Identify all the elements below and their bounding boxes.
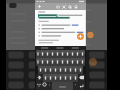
button[interactable]: K <box>73 66 78 74</box>
button[interactable]: Compose <box>77 33 84 40</box>
button[interactable]: 4 <box>50 50 55 58</box>
button[interactable]: R <box>50 58 55 66</box>
button[interactable]: D <box>48 66 53 74</box>
button[interactable]: C <box>53 74 58 82</box>
button[interactable]: Paste <box>73 4 79 10</box>
button[interactable]: I <box>70 58 75 66</box>
button[interactable]: Space <box>52 82 73 90</box>
button[interactable]: 6 <box>60 50 65 58</box>
button[interactable]: Shift <box>36 74 43 82</box>
button[interactable]: Emoji <box>42 82 47 90</box>
button[interactable]: H <box>63 66 68 74</box>
button[interactable]: P <box>80 58 85 66</box>
button[interactable]: Period <box>73 82 78 90</box>
button[interactable]: 0 <box>80 50 85 58</box>
button[interactable]: G <box>58 66 63 74</box>
button[interactable]: S <box>43 66 48 74</box>
button[interactable]: Undo <box>55 4 61 10</box>
button[interactable]: Symbols <box>36 82 42 90</box>
button[interactable]: O <box>75 58 80 66</box>
button[interactable]: 1 <box>36 50 40 58</box>
button[interactable]: 9 <box>75 50 80 58</box>
button[interactable]: X <box>48 74 53 82</box>
button[interactable]: Enter <box>78 82 85 90</box>
button[interactable]: L <box>78 66 83 74</box>
button[interactable]: V <box>58 74 63 82</box>
button[interactable]: N <box>68 74 73 82</box>
button[interactable]: U <box>65 58 70 66</box>
button[interactable]: M <box>73 74 78 82</box>
button[interactable]: Add <box>37 4 42 9</box>
button[interactable]: 2 <box>40 50 45 58</box>
button[interactable]: 7 <box>65 50 70 58</box>
button[interactable]: E <box>45 58 50 66</box>
button[interactable]: Copy <box>67 4 73 10</box>
button[interactable]: Q <box>36 58 40 66</box>
button[interactable]: Comma <box>47 82 52 90</box>
button[interactable]: A <box>38 66 43 74</box>
button[interactable]: F <box>53 66 58 74</box>
button[interactable]: J <box>68 66 73 74</box>
button[interactable]: 8 <box>70 50 75 58</box>
button[interactable]: Cut <box>61 4 67 10</box>
button[interactable]: Backspace <box>78 74 85 82</box>
button[interactable]: T <box>55 58 60 66</box>
button[interactable]: W <box>40 58 45 66</box>
button[interactable]: 3 <box>45 50 50 58</box>
button[interactable]: Y <box>60 58 65 66</box>
button[interactable]: Z <box>43 74 48 82</box>
button[interactable]: 5 <box>55 50 60 58</box>
button[interactable]: B <box>63 74 68 82</box>
